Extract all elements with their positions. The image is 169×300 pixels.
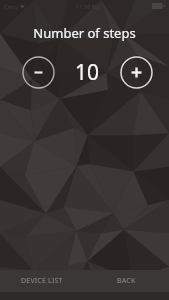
staticText: 10 bbox=[75, 58, 100, 87]
button[interactable]: DEVICE LIST bbox=[0, 270, 84, 292]
button[interactable]: BACK bbox=[84, 270, 169, 292]
staticText: DEVICE LIST bbox=[21, 276, 63, 286]
button[interactable]: Increase number of steps bbox=[120, 56, 153, 89]
staticText: BACK bbox=[117, 276, 136, 286]
staticText: 11:16 PM bbox=[76, 3, 100, 10]
staticText: Cincy bbox=[4, 3, 18, 10]
button[interactable]: Decrease number of steps bbox=[22, 56, 55, 89]
staticText: Number of steps bbox=[0, 24, 169, 42]
